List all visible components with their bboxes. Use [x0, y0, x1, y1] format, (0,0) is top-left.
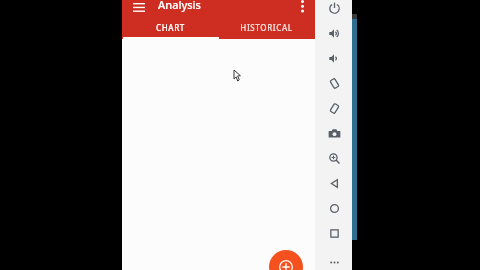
button[interactable]: Power	[320, 0, 348, 17]
staticText: HISTORICAL	[240, 22, 293, 33]
button[interactable]: Overview	[320, 225, 348, 242]
button[interactable]: Volume down	[320, 50, 348, 67]
button[interactable]: Rotate left	[320, 75, 348, 92]
staticText: CHART	[156, 22, 185, 33]
button[interactable]: Rotate right	[320, 100, 348, 117]
button[interactable]: Add	[269, 250, 303, 270]
button[interactable]: Take screenshot	[320, 125, 348, 142]
button[interactable]: Home	[320, 200, 348, 217]
button[interactable]: More options	[293, 0, 311, 15]
staticText: Analysis	[158, 0, 201, 12]
button[interactable]: CHART	[122, 15, 218, 39]
button[interactable]: HISTORICAL	[218, 15, 315, 39]
button[interactable]: More	[320, 254, 348, 270]
button[interactable]: Zoom	[320, 150, 348, 167]
button[interactable]: Volume up	[320, 25, 348, 42]
button[interactable]: Back	[320, 175, 348, 192]
button[interactable]: Open navigation drawer	[128, 0, 150, 15]
